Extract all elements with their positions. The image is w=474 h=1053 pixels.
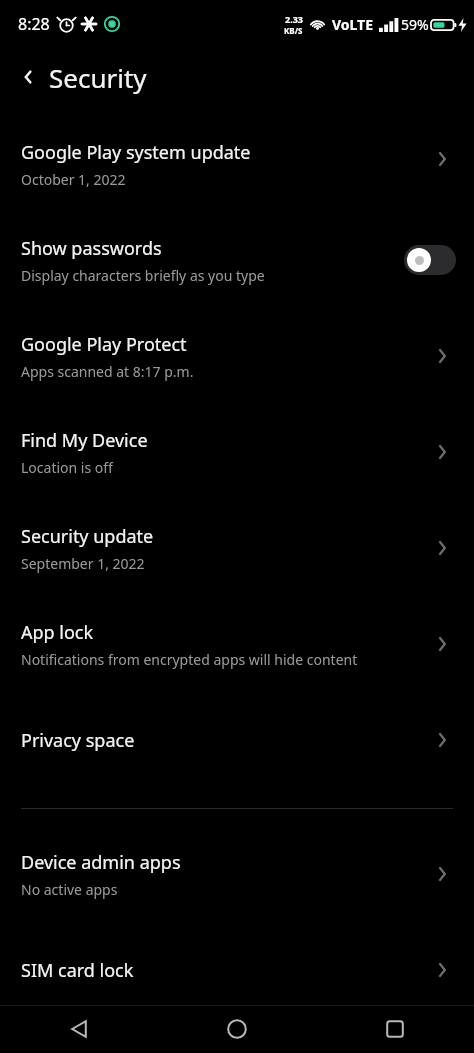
staticText: Location is off [21, 458, 113, 477]
button[interactable]: Back [0, 48, 474, 106]
staticText: Security [49, 60, 147, 95]
staticText: 2.33 [285, 13, 303, 25]
button[interactable]: Back [0, 1005, 158, 1053]
staticText: October 1, 2022 [21, 170, 126, 189]
staticText: 59% [401, 15, 429, 34]
staticText: September 1, 2022 [21, 554, 145, 573]
staticText: Display characters briefly as you type [21, 266, 265, 285]
button[interactable]: App lock [0, 596, 474, 692]
button[interactable]: Home [158, 1005, 316, 1053]
staticText: Security update [21, 524, 154, 549]
button[interactable]: Device admin apps [0, 826, 474, 922]
staticText: Find My Device [21, 428, 148, 453]
staticText: Google Play Protect [21, 332, 187, 357]
staticText: VoLTE [332, 15, 374, 34]
staticText: Device admin apps [21, 850, 181, 875]
button[interactable]: Google Play system update [0, 106, 474, 212]
staticText: App lock [21, 620, 94, 645]
staticText: SIM card lock [21, 958, 134, 983]
staticText: Apps scanned at 8:17 p.m. [21, 362, 194, 381]
staticText: Notifications from encrypted apps will h… [21, 650, 358, 669]
staticText: Google Play system update [21, 140, 251, 165]
button[interactable]: Show passwords [0, 212, 474, 308]
button[interactable]: Security update [0, 500, 474, 596]
button[interactable]: Show passwords toggle [404, 245, 456, 275]
button[interactable]: Privacy space [0, 692, 474, 788]
staticText: KB/S [284, 25, 303, 36]
staticText: No active apps [21, 880, 118, 899]
staticText: Show passwords [21, 236, 162, 261]
button[interactable]: Find My Device [0, 404, 474, 500]
button[interactable]: Google Play Protect [0, 308, 474, 404]
staticText: Encryption and credentials [21, 1023, 246, 1048]
button[interactable]: Encryption and credentials [0, 1018, 474, 1053]
button[interactable]: Recent apps [316, 1005, 474, 1053]
button[interactable]: SIM card lock [0, 922, 474, 1018]
staticText: 8:28 [18, 13, 50, 35]
staticText: Privacy space [21, 728, 135, 753]
